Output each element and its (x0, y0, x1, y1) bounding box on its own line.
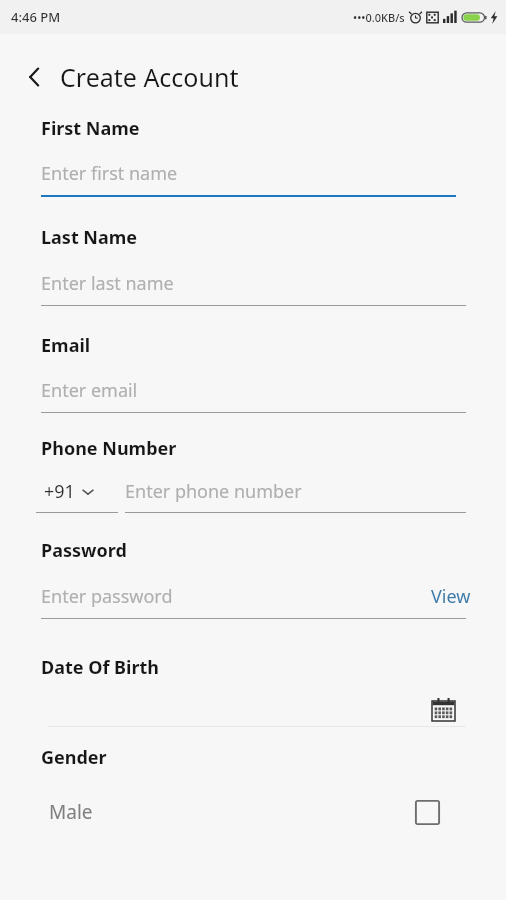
staticText: Password (41, 538, 127, 563)
button[interactable]: Pick date (430, 696, 456, 722)
staticText: Last Name (41, 225, 138, 250)
staticText: Enter phone number (125, 479, 506, 504)
staticText: Enter last name (41, 271, 174, 296)
staticText: Email (41, 333, 91, 358)
staticText: Phone Number (41, 436, 177, 461)
staticText: Male (49, 799, 414, 825)
staticText: +91 (44, 479, 75, 504)
staticText: Enter email (41, 378, 138, 403)
staticText: Gender (41, 745, 107, 770)
button[interactable]: Male (0, 792, 506, 832)
button[interactable]: View (431, 584, 471, 609)
staticText: Enter password (41, 584, 431, 609)
button[interactable]: Back (18, 60, 52, 94)
staticText: 4:46 PM (11, 8, 61, 26)
staticText: Enter first name (41, 161, 178, 186)
staticText: Date Of Birth (41, 655, 159, 680)
staticText: View (431, 584, 471, 609)
staticText: Create Account (60, 60, 239, 94)
staticText: First Name (41, 116, 140, 141)
button[interactable]: +91 (36, 479, 118, 504)
staticText: •••0.0KB/s (353, 10, 405, 25)
